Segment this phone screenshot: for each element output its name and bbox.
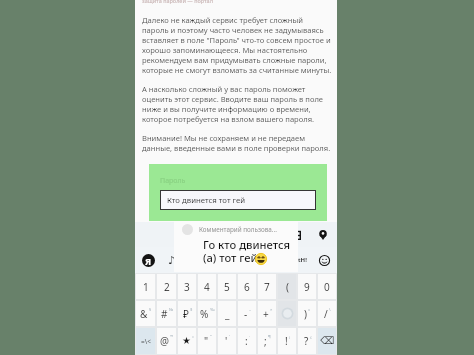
button[interactable]: ' — [218, 328, 236, 354]
staticText: Кто двинется тот гей — [167, 195, 246, 206]
button[interactable]: ⌫ — [318, 328, 336, 354]
staticText: ? — [304, 334, 309, 348]
staticText: " — [204, 334, 209, 348]
staticText: ¡ — [289, 334, 291, 340]
staticText: ! — [285, 334, 288, 348]
staticText: 7 — [264, 280, 270, 294]
button[interactable]: : — [238, 328, 256, 354]
button[interactable]: Music — [166, 254, 178, 266]
button[interactable]: % — [198, 301, 216, 326]
staticText: + — [263, 307, 269, 321]
staticText: Пароль — [160, 176, 186, 186]
staticText: ¿ — [310, 334, 312, 340]
staticText: Я — [145, 255, 152, 267]
staticText: : — [245, 334, 248, 348]
button[interactable]: 7 — [258, 274, 276, 299]
staticText: 5 — [224, 280, 230, 294]
staticText: 6 — [244, 280, 250, 294]
staticText: 0 — [324, 280, 330, 294]
staticText: ♪ — [168, 254, 176, 266]
button[interactable]: - — [238, 301, 256, 326]
button[interactable]: =\< — [136, 328, 155, 354]
staticText: % — [200, 307, 209, 321]
staticText: · — [249, 334, 251, 340]
button[interactable]: 4 — [198, 274, 216, 299]
button[interactable]: 9 — [298, 274, 316, 299]
staticText: - — [244, 307, 248, 321]
button[interactable]: Кто двинется тот гей — [160, 190, 316, 210]
staticText: Го кто двинется (а) тот гей — [203, 237, 291, 265]
button[interactable]: Комментарий пользова... — [174, 221, 298, 272]
staticText: 3 — [184, 280, 190, 294]
button[interactable]: / — [318, 301, 336, 326]
staticText: ‘ — [229, 334, 230, 340]
staticText: ★ — [182, 335, 191, 347]
staticText: » — [308, 307, 311, 313]
button[interactable]: Clipboard — [289, 228, 303, 242]
button[interactable]: & — [136, 301, 155, 326]
button[interactable]: ; — [258, 328, 276, 354]
button[interactable]: Yandex — [142, 254, 155, 267]
staticText: ' — [225, 334, 228, 348]
staticText: tH! — [298, 256, 307, 264]
staticText: – — [249, 307, 252, 313]
staticText: 4 — [204, 280, 210, 294]
staticText: Внимание! Мы не сохраняем и не передаем … — [142, 133, 331, 153]
button[interactable]: ₽ — [178, 301, 196, 326]
button[interactable]: @ — [157, 328, 176, 354]
staticText: =\< — [141, 337, 151, 346]
staticText: “ — [210, 334, 212, 340]
staticText: ( — [286, 280, 289, 294]
staticText: § — [149, 307, 152, 313]
staticText: А насколько сложный у вас пароль поможет… — [142, 84, 324, 124]
button[interactable]: # — [157, 301, 176, 326]
button[interactable] — [278, 301, 296, 326]
staticText: ) — [304, 307, 307, 321]
staticText: & — [140, 307, 148, 321]
button[interactable]: ) — [298, 301, 316, 326]
staticText: Комментарий пользова... — [199, 225, 277, 234]
button[interactable]: + — [258, 301, 276, 326]
button[interactable]: ★ — [178, 328, 196, 354]
staticText: 1 — [143, 280, 149, 294]
staticText: ‰ — [210, 307, 215, 313]
button[interactable]: 6 — [238, 274, 256, 299]
staticText: _ — [225, 307, 230, 321]
staticText: 2 — [164, 280, 170, 294]
button[interactable]: 3 — [178, 274, 196, 299]
staticText: ° — [192, 335, 194, 341]
button[interactable]: 1 — [136, 274, 155, 299]
button[interactable]: " — [198, 328, 216, 354]
staticText: защита паролей — портал — [142, 0, 213, 4]
staticText: \ — [329, 307, 331, 313]
staticText: ; — [264, 334, 267, 348]
staticText: № — [169, 307, 174, 313]
button[interactable]: _ — [218, 301, 236, 326]
staticText: ¶ — [268, 334, 271, 340]
staticText: ™ — [170, 334, 174, 340]
button[interactable]: Emoji — [317, 253, 331, 267]
staticText: 9 — [304, 280, 310, 294]
button[interactable]: ( — [278, 274, 296, 299]
staticText: Далеко не каждый сервис требует сложный … — [142, 15, 332, 75]
staticText: / — [324, 307, 328, 321]
staticText: @ — [160, 334, 169, 348]
staticText: # — [161, 307, 168, 321]
button[interactable]: ! — [278, 328, 296, 354]
button[interactable]: ? — [298, 328, 316, 354]
button[interactable]: 5 — [218, 274, 236, 299]
button[interactable]: Location — [316, 228, 330, 242]
staticText: × — [270, 307, 273, 313]
staticText: ⌫ — [320, 335, 335, 347]
button[interactable]: 2 — [157, 274, 176, 299]
staticText: $ — [190, 307, 193, 313]
staticText: ₽ — [183, 307, 189, 321]
button[interactable]: 0 — [318, 274, 336, 299]
